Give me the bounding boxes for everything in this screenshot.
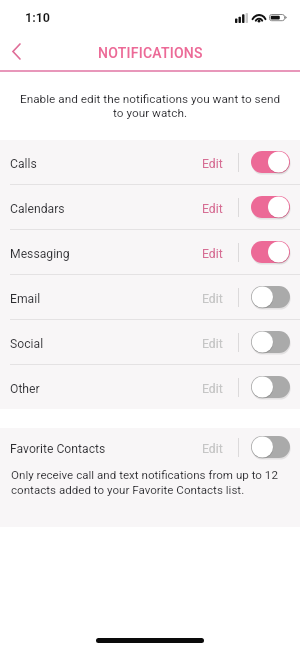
button[interactable]: Messaging xyxy=(0,230,300,274)
staticText: Edit xyxy=(202,442,223,456)
staticText: Favorite Contacts xyxy=(10,442,106,456)
button[interactable]: Social xyxy=(0,320,300,364)
staticText: Messaging xyxy=(10,247,70,261)
button[interactable]: Switch on xyxy=(251,196,291,219)
button[interactable]: Other xyxy=(0,365,300,409)
staticText: NOTIFICATIONS xyxy=(98,45,203,61)
staticText: 1:10 xyxy=(25,10,51,25)
staticText: Edit xyxy=(202,202,223,216)
button[interactable]: Calendars xyxy=(0,185,300,229)
button[interactable]: Edit xyxy=(194,149,230,179)
button[interactable]: Switch off xyxy=(251,286,291,309)
button[interactable]: Edit xyxy=(194,194,230,224)
button[interactable]: Switch on xyxy=(251,151,291,174)
button[interactable]: Switch off xyxy=(251,376,291,399)
staticText: Edit xyxy=(202,292,223,306)
staticText: Social xyxy=(10,337,44,351)
button[interactable]: Calls xyxy=(0,140,300,184)
staticText: Edit xyxy=(202,247,223,261)
button[interactable]: Switch off xyxy=(251,331,291,354)
button[interactable]: Edit xyxy=(194,434,230,464)
staticText: Edit xyxy=(202,382,223,396)
button[interactable]: Edit xyxy=(194,374,230,404)
staticText: Edit xyxy=(202,337,223,351)
staticText: Only receive call and text notifications… xyxy=(11,468,278,496)
button[interactable]: Back xyxy=(2,34,32,68)
button[interactable]: Email xyxy=(0,275,300,319)
button[interactable]: Favorite Contacts xyxy=(0,428,300,466)
button[interactable]: Edit xyxy=(194,329,230,359)
staticText: Edit xyxy=(202,157,223,171)
staticText: Email xyxy=(10,292,41,306)
staticText: Enable and edit the notifications you wa… xyxy=(12,92,288,120)
button[interactable]: Edit xyxy=(194,284,230,314)
button[interactable]: Switch off xyxy=(251,436,291,459)
button[interactable]: Edit xyxy=(194,239,230,269)
staticText: Calls xyxy=(10,157,37,171)
button[interactable]: Switch on xyxy=(251,241,291,264)
staticText: Calendars xyxy=(10,202,65,216)
staticText: Other xyxy=(10,382,40,396)
